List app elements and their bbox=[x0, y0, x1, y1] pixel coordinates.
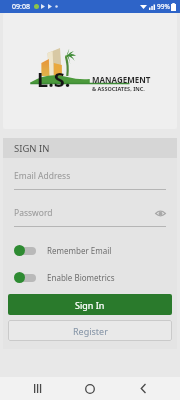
button[interactable]: Back bbox=[128, 377, 158, 400]
staticText: Enable Biometrics bbox=[47, 272, 115, 283]
staticText: 09:08 bbox=[12, 2, 30, 12]
button[interactable]: Sign In bbox=[8, 294, 172, 315]
staticText: & ASSOCIATES, INC. bbox=[92, 85, 145, 92]
staticText: L.S. bbox=[37, 66, 71, 93]
staticText: Sign In bbox=[75, 299, 105, 311]
other: Show password bbox=[154, 207, 166, 219]
staticText: Password bbox=[14, 207, 53, 219]
button[interactable]: Home bbox=[75, 377, 105, 400]
staticText: Email Address bbox=[14, 170, 71, 182]
staticText: SIGN IN bbox=[14, 142, 50, 155]
button[interactable]: Email Address bbox=[14, 167, 166, 190]
button[interactable]: Password bbox=[14, 204, 166, 227]
staticText: 99% bbox=[157, 2, 170, 11]
button[interactable]: Register bbox=[8, 320, 172, 341]
staticText: Remember Email bbox=[47, 245, 112, 256]
button[interactable]: Recent apps bbox=[23, 377, 53, 400]
staticText: MANAGEMENT bbox=[92, 74, 151, 85]
button[interactable]: Enable Biometrics bbox=[14, 269, 166, 285]
button[interactable]: Remember Email bbox=[14, 242, 166, 258]
staticText: Register bbox=[73, 325, 108, 337]
